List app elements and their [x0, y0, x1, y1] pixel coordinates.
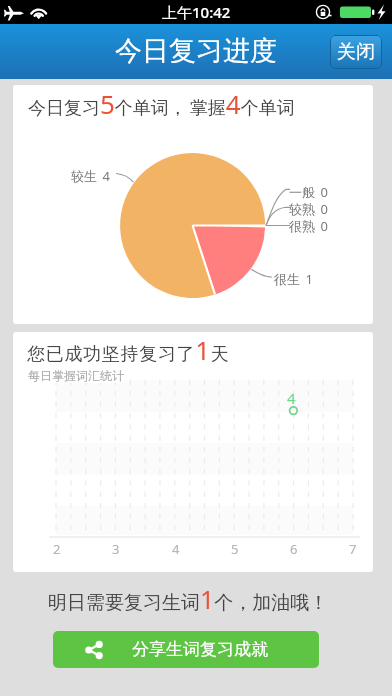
staticText: 3: [112, 540, 120, 558]
staticText: 今日复习5个单词， 掌握4个单词: [28, 86, 295, 121]
staticText: 4: [172, 540, 180, 558]
staticText: 很生 1: [274, 270, 313, 288]
button[interactable]: 关闭: [330, 35, 382, 69]
staticText: 2: [53, 540, 61, 558]
staticText: 明日需要复习生词1个，加油哦！: [48, 582, 329, 616]
staticText: 5: [231, 540, 239, 558]
staticText: 较生 4: [71, 167, 110, 185]
staticText: 很熟 0: [289, 217, 328, 235]
staticText: 7: [349, 540, 357, 558]
staticText: 分享生词复习成就: [132, 639, 268, 660]
staticText: 一般 0: [289, 183, 328, 201]
staticText: 较熟 0: [289, 200, 328, 218]
staticText: 今日复习进度: [115, 34, 277, 68]
staticText: 每日掌握词汇统计: [28, 368, 124, 383]
button[interactable]: 分享生词复习成就: [53, 631, 319, 668]
staticText: 您已成功坚持复习了1天: [27, 332, 230, 367]
staticText: 关闭: [337, 40, 375, 64]
staticText: 4: [287, 388, 296, 408]
staticText: 上午10:42: [162, 2, 231, 22]
staticText: 6: [290, 540, 298, 558]
